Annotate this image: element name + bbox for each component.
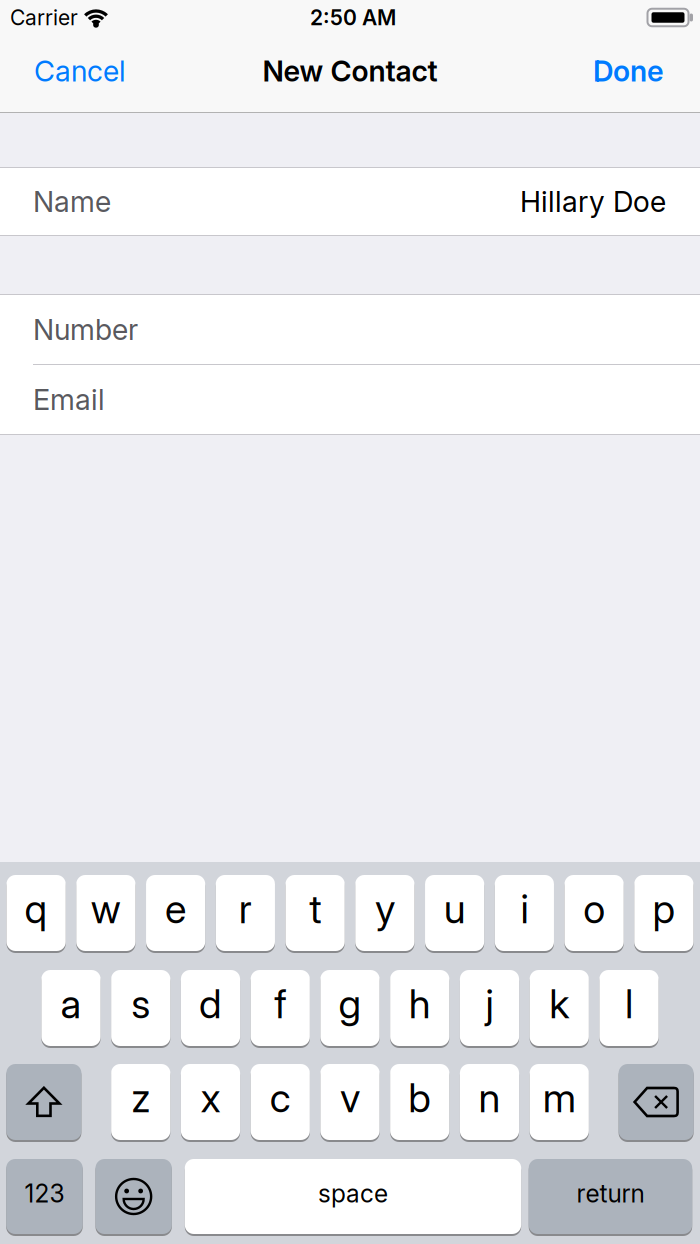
staticText: o xyxy=(583,885,605,933)
button[interactable]: k xyxy=(530,970,589,1046)
button[interactable]: 123 xyxy=(6,1159,83,1234)
button[interactable]: t xyxy=(285,875,345,951)
button[interactable]: s xyxy=(111,970,170,1046)
staticText: return xyxy=(576,1179,644,1208)
button[interactable]: return xyxy=(529,1159,692,1234)
button[interactable]: a xyxy=(41,970,101,1046)
staticText: Hillary Doe xyxy=(520,184,666,219)
button[interactable]: r xyxy=(216,875,275,951)
staticText: s xyxy=(131,980,150,1028)
button[interactable]: Cancel xyxy=(34,54,126,88)
staticText: Cancel xyxy=(34,54,126,88)
staticText: h xyxy=(409,980,431,1028)
button[interactable]: w xyxy=(76,875,135,951)
button[interactable]: n xyxy=(460,1064,519,1140)
button[interactable]: i xyxy=(495,875,554,951)
staticText: d xyxy=(199,980,222,1028)
staticText: q xyxy=(25,885,48,933)
staticText: a xyxy=(60,980,81,1028)
button[interactable]: b xyxy=(390,1064,449,1140)
button[interactable]: l xyxy=(599,970,659,1046)
staticText: p xyxy=(652,885,675,933)
button[interactable]: space xyxy=(185,1159,521,1234)
button[interactable]: m xyxy=(530,1064,589,1140)
button[interactable]: y xyxy=(355,875,414,951)
staticText: New Contact xyxy=(262,54,437,88)
staticText: Done xyxy=(593,54,664,88)
staticText: i xyxy=(520,885,528,933)
button[interactable]: x xyxy=(181,1064,240,1140)
staticText: 123 xyxy=(24,1179,64,1208)
staticText: j xyxy=(485,980,493,1028)
staticText: w xyxy=(91,885,121,933)
staticText: n xyxy=(478,1074,500,1122)
button[interactable]: f xyxy=(251,970,310,1046)
staticText: Carrier xyxy=(10,5,78,30)
staticText: t xyxy=(309,885,321,933)
staticText: z xyxy=(131,1074,150,1122)
staticText: c xyxy=(270,1074,291,1122)
button[interactable]: o xyxy=(564,875,624,951)
staticText: r xyxy=(239,885,252,933)
button[interactable]: d xyxy=(181,970,240,1046)
button[interactable]: Done xyxy=(593,54,664,88)
button[interactable]: g xyxy=(320,970,380,1046)
button[interactable]: h xyxy=(390,970,449,1046)
staticText: g xyxy=(338,980,361,1028)
button[interactable]: z xyxy=(111,1064,170,1140)
button[interactable]: e xyxy=(146,875,205,951)
staticText: f xyxy=(274,980,286,1028)
staticText: e xyxy=(165,885,186,933)
button[interactable]: Number xyxy=(0,295,700,364)
staticText: space xyxy=(318,1179,388,1208)
button[interactable]: Delete xyxy=(619,1064,694,1140)
button[interactable]: p xyxy=(634,875,693,951)
staticText: Number xyxy=(33,312,138,347)
staticText: b xyxy=(408,1074,431,1122)
staticText: y xyxy=(375,885,395,933)
button[interactable]: Shift xyxy=(6,1064,81,1140)
staticText: k xyxy=(549,980,569,1028)
staticText: v xyxy=(340,1074,360,1122)
staticText: Email xyxy=(33,382,105,417)
staticText: m xyxy=(543,1074,576,1122)
staticText: 2:50 AM xyxy=(310,5,396,30)
staticText: x xyxy=(200,1074,220,1122)
button[interactable]: q xyxy=(6,875,66,951)
button[interactable]: Email xyxy=(0,365,700,434)
button[interactable]: v xyxy=(320,1064,380,1140)
button[interactable]: Emoji xyxy=(95,1159,172,1234)
button[interactable]: j xyxy=(460,970,519,1046)
staticText: u xyxy=(444,885,466,933)
staticText: l xyxy=(625,980,633,1028)
staticText: Name xyxy=(33,184,111,219)
button[interactable]: c xyxy=(251,1064,310,1140)
button[interactable]: u xyxy=(425,875,484,951)
button[interactable]: Name xyxy=(0,168,700,235)
